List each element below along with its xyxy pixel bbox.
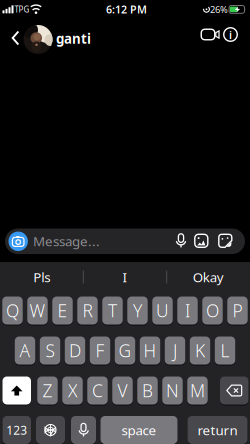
staticText: TPG — [14, 4, 29, 15]
staticText: 6:12 PM — [106, 2, 147, 16]
staticText: J — [173, 339, 177, 362]
staticText: Z — [42, 379, 52, 402]
staticText: G — [118, 339, 131, 362]
staticText: X — [68, 379, 77, 402]
staticText: Okay — [193, 268, 224, 286]
staticText: T — [108, 299, 117, 322]
staticText: return — [197, 421, 237, 439]
staticText: Q — [6, 299, 19, 322]
staticText: Pls — [33, 268, 50, 286]
staticText: 26% — [210, 3, 228, 15]
staticText: i — [229, 28, 232, 42]
staticText: N — [166, 379, 179, 402]
staticText: A — [19, 339, 30, 362]
staticText: H — [143, 339, 156, 362]
staticText: D — [69, 339, 81, 362]
staticText: K — [195, 339, 205, 362]
staticText: C — [92, 379, 103, 402]
staticText: I — [122, 268, 127, 286]
staticText: O — [206, 299, 219, 322]
staticText: P — [232, 299, 242, 322]
staticText: B — [142, 379, 153, 402]
staticText: Y — [133, 299, 142, 322]
staticText: E — [57, 299, 67, 322]
staticText: L — [220, 339, 229, 362]
staticText: F — [95, 339, 104, 362]
staticText: S — [45, 339, 54, 362]
staticText: Message... — [33, 232, 100, 250]
staticText: W — [29, 299, 45, 322]
staticText: U — [156, 299, 169, 322]
staticText: 123 — [6, 422, 27, 438]
staticText: space — [121, 421, 156, 439]
staticText: I — [185, 299, 190, 322]
staticText: V — [117, 379, 127, 402]
staticText: M — [190, 379, 205, 402]
staticText: R — [82, 299, 92, 322]
staticText: ganti — [56, 30, 91, 47]
